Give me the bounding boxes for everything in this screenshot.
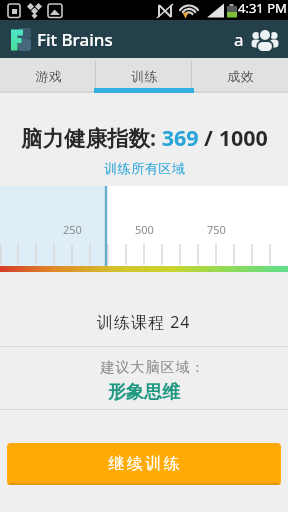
staticText: 250	[63, 222, 82, 237]
button[interactable]: 训练所有区域	[104, 160, 185, 176]
staticText: Fit Brains	[37, 28, 113, 51]
staticText: a	[234, 28, 244, 51]
button[interactable]: 继续训练	[7, 443, 281, 485]
button[interactable]: 成效	[192, 58, 288, 93]
button[interactable]: 游戏	[0, 58, 96, 93]
button[interactable]: 训练	[96, 58, 192, 93]
staticText: 建议大脑区域：	[100, 359, 205, 377]
staticText: 训练课程 24	[97, 311, 191, 333]
staticText: 750	[207, 222, 226, 237]
button[interactable]	[246, 20, 284, 58]
staticText: 训练所有区域	[104, 160, 185, 176]
staticText: 继续训练	[107, 454, 181, 474]
staticText: 500	[135, 222, 154, 237]
staticText: 成效	[227, 68, 254, 84]
staticText: 4:31 PM	[238, 0, 287, 17]
staticText: 训练	[131, 68, 158, 84]
staticText: 形象思维	[108, 381, 180, 404]
staticText: 游戏	[35, 68, 62, 84]
staticText: 脑力健康指数: 369 / 1000	[21, 123, 268, 152]
